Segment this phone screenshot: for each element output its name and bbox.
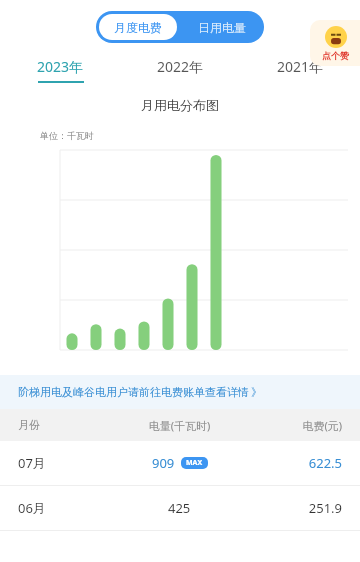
- staticText: 日用电量: [198, 20, 246, 35]
- staticText: 月份: [18, 418, 112, 432]
- button[interactable]: 2021年: [240, 57, 360, 83]
- staticText: 425: [168, 499, 191, 517]
- staticText: 2021年: [277, 57, 324, 76]
- button[interactable]: 2023年: [0, 57, 120, 83]
- button[interactable]: 07月: [0, 441, 360, 485]
- staticText: 月用电分布图: [0, 97, 360, 113]
- staticText: 》: [251, 385, 262, 399]
- staticText: 单位：千瓦时: [40, 130, 94, 141]
- button[interactable]: 月度电费: [99, 14, 177, 40]
- staticText: 07月: [18, 454, 112, 472]
- staticText: 月度电费: [114, 20, 162, 35]
- staticText: 909: [152, 454, 175, 472]
- button[interactable]: 2022年: [120, 57, 240, 83]
- staticText: 251.9: [247, 499, 342, 517]
- button[interactable]: 06月: [0, 486, 360, 530]
- staticText: 点个赞: [322, 50, 349, 61]
- staticText: MAX: [186, 458, 203, 468]
- staticText: 622.5: [247, 454, 342, 472]
- staticText: 阶梯用电及峰谷电用户请前往电费账单查看详情: [18, 385, 249, 399]
- button[interactable]: 点个赞: [310, 20, 360, 66]
- staticText: 电量(千瓦时): [112, 418, 247, 433]
- staticText: 电费(元): [247, 418, 342, 433]
- staticText: 06月: [18, 499, 112, 517]
- button[interactable]: 阶梯用电及峰谷电用户请前往电费账单查看详情: [0, 375, 360, 409]
- staticText: 2022年: [157, 57, 204, 76]
- staticText: 2023年: [37, 57, 84, 76]
- button[interactable]: 日用电量: [180, 11, 264, 43]
